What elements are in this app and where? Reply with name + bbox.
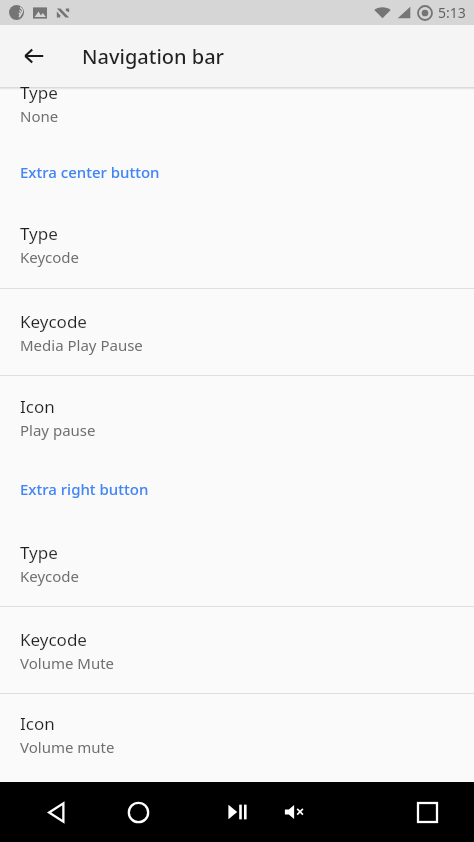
staticText: Extra center button: [20, 162, 160, 182]
staticText: Type: [20, 222, 58, 245]
button[interactable]: Icon: [0, 376, 474, 458]
button[interactable]: Type: [0, 520, 474, 606]
staticText: Icon: [20, 712, 55, 735]
button[interactable]: Type: [0, 90, 474, 143]
staticText: Volume Mute: [20, 653, 115, 673]
staticText: Media Play Pause: [20, 335, 143, 355]
button[interactable]: Back: [33, 788, 81, 836]
staticText: Volume mute: [20, 737, 115, 757]
staticText: None: [20, 106, 59, 126]
button[interactable]: Extra center button: [0, 143, 474, 201]
button[interactable]: Home: [114, 788, 162, 836]
staticText: Keycode: [20, 247, 80, 267]
staticText: 5:13: [438, 3, 466, 22]
button[interactable]: Volume mute: [272, 789, 318, 835]
button[interactable]: Play pause: [215, 789, 261, 835]
button[interactable]: Extra right button: [0, 458, 474, 520]
staticText: Keycode: [20, 310, 87, 333]
button[interactable]: Type: [0, 201, 474, 288]
button[interactable]: Back: [10, 32, 58, 80]
staticText: Navigation bar: [82, 43, 225, 70]
staticText: Play pause: [20, 420, 96, 440]
staticText: Keycode: [20, 566, 80, 586]
staticText: Icon: [20, 395, 55, 418]
staticText: Type: [20, 541, 58, 564]
staticText: Keycode: [20, 628, 87, 651]
staticText: Extra right button: [20, 479, 149, 499]
button[interactable]: Keycode: [0, 607, 474, 693]
staticText: Type: [20, 81, 58, 104]
button[interactable]: Recent apps: [403, 788, 451, 836]
button[interactable]: Icon: [0, 694, 474, 774]
button[interactable]: Keycode: [0, 289, 474, 375]
